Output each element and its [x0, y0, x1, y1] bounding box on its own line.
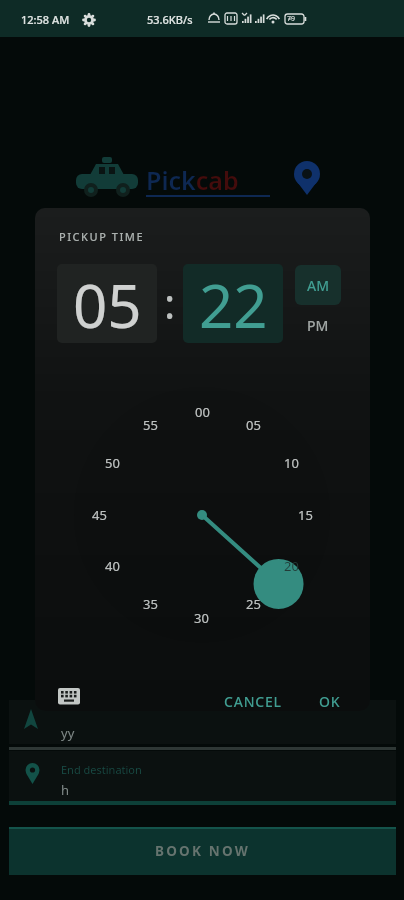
staticText: 53.6KB/s	[147, 12, 193, 26]
staticText: h	[61, 781, 70, 797]
staticText: 50	[105, 454, 120, 472]
staticText: 35	[143, 595, 158, 613]
button[interactable]	[52, 680, 86, 711]
staticText: :	[164, 274, 176, 331]
staticText: PM	[307, 316, 329, 335]
staticText: 15	[298, 506, 313, 524]
staticText: BOOK NOW	[155, 842, 250, 860]
staticText: 20	[284, 557, 299, 575]
staticText: 05	[246, 416, 261, 434]
button[interactable]: CANCEL	[211, 686, 295, 711]
button[interactable]: AM	[295, 265, 341, 305]
staticText: 25	[246, 595, 261, 613]
staticText: End destination	[61, 762, 142, 776]
button[interactable]: End destination	[9, 751, 396, 801]
staticText: 12:58 AM	[21, 12, 70, 26]
staticText: OK	[319, 692, 341, 711]
button[interactable]: Pickcab	[146, 163, 270, 197]
staticText: 79	[287, 14, 296, 24]
button[interactable]: PM	[295, 311, 341, 339]
button[interactable]: yy	[9, 700, 396, 744]
staticText: CANCEL	[224, 692, 282, 711]
staticText: AM	[307, 276, 330, 295]
staticText: 10	[284, 454, 299, 472]
staticText: 55	[143, 416, 158, 434]
staticText: yy	[61, 724, 75, 742]
staticText: 45	[92, 506, 107, 524]
staticText: 40	[105, 557, 120, 575]
staticText: 30	[194, 609, 209, 627]
staticText: Pickcab	[146, 163, 239, 197]
button[interactable]: 05	[57, 264, 157, 343]
button[interactable]: BOOK NOW	[9, 827, 396, 875]
staticText: 05	[73, 264, 142, 343]
button[interactable]: 22	[183, 264, 283, 343]
staticText: PICKUP TIME	[59, 229, 145, 244]
staticText: 00	[195, 403, 210, 421]
button[interactable]: OK	[307, 686, 353, 711]
staticText: 22	[199, 264, 268, 343]
